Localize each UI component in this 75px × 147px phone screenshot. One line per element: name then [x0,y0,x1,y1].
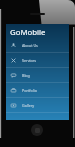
staticText: Gallery [22,103,35,108]
staticText: Services [22,58,37,63]
staticText: Portfolio [22,88,37,93]
button[interactable]: Gallery [6,98,69,112]
button[interactable]: Home [31,124,43,136]
staticText: GoMobile [10,27,46,38]
button[interactable]: Blog [6,68,69,82]
button[interactable]: About Us [6,38,69,52]
button[interactable]: Portfolio [6,83,69,97]
staticText: Blog [22,73,30,78]
button[interactable]: Services [6,53,69,67]
staticText: About Us [22,43,38,48]
